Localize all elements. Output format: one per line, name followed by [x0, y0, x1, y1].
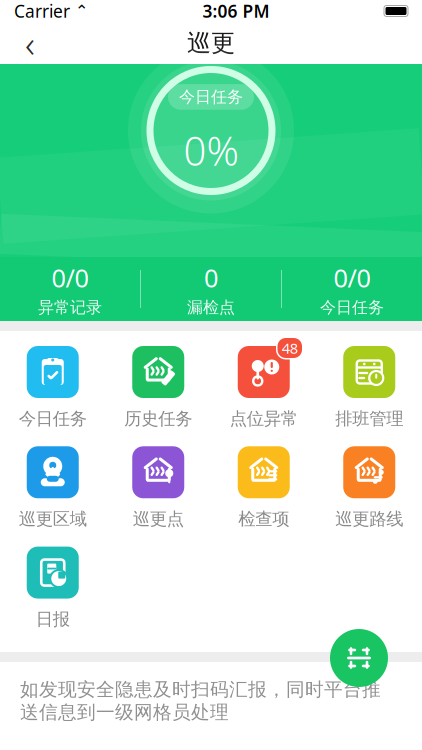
staticText: 检查项 [238, 508, 289, 530]
staticText: 0% [183, 124, 238, 177]
staticText: ‹ [25, 18, 35, 68]
button[interactable]: 扫码 [330, 629, 388, 687]
staticText: 如发现安全隐患及时扫码汇报，同时平台推送信息到一级网格员处理 [20, 678, 381, 724]
button[interactable]: 巡更点 [105, 445, 211, 530]
button[interactable]: 排班管理 [316, 345, 422, 429]
staticText: 日报 [36, 609, 70, 630]
button[interactable]: 今日任务 [0, 345, 105, 429]
staticText: 巡更点 [133, 508, 184, 530]
button[interactable]: 历史任务 [105, 345, 211, 429]
staticText: ⌃ [70, 2, 88, 20]
button[interactable]: 日报 [0, 546, 105, 630]
button[interactable]: Back [8, 23, 52, 63]
button[interactable]: 48 [211, 345, 316, 429]
staticText: 历史任务 [124, 408, 192, 429]
staticText: 3:06 PM [202, 0, 269, 22]
staticText: 巡更 [187, 28, 235, 58]
staticText: 0/0 [51, 261, 88, 294]
staticText: 巡更区域 [19, 508, 87, 530]
staticText: 排班管理 [335, 408, 403, 429]
staticText: 48 [282, 338, 298, 358]
staticText: 漏检点 [187, 297, 235, 317]
staticText: 巡更路线 [335, 508, 403, 530]
staticText: 0 [204, 261, 218, 294]
button[interactable]: 巡更区域 [0, 445, 105, 530]
staticText: 异常记录 [38, 297, 102, 317]
button[interactable]: 检查项 [211, 445, 316, 530]
staticText: 今日任务 [179, 87, 243, 107]
button[interactable]: 巡更路线 [316, 445, 422, 530]
staticText: Carrier [14, 0, 70, 22]
staticText: 今日任务 [19, 408, 87, 429]
staticText: 点位异常 [230, 408, 298, 429]
staticText: 0/0 [333, 261, 370, 294]
staticText: 今日任务 [320, 297, 384, 317]
